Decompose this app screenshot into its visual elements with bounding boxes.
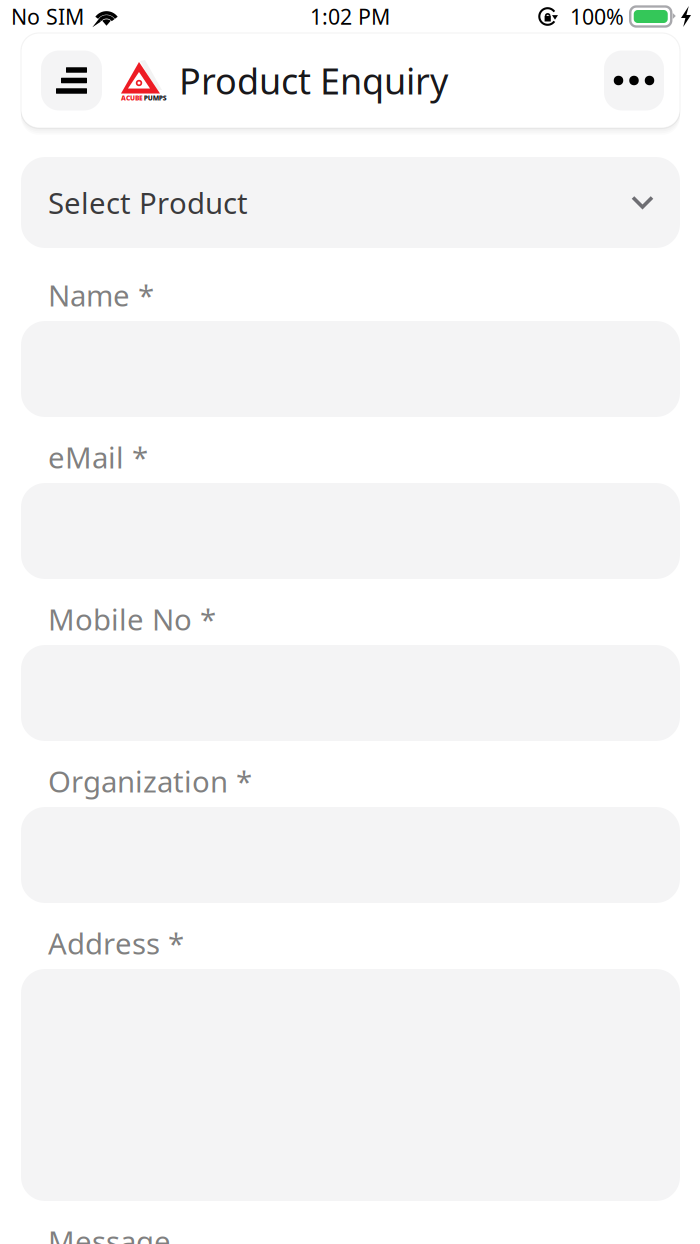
staticText: 1:02 PM: [310, 2, 390, 31]
staticText: Address *: [48, 923, 184, 962]
staticText: Name *: [48, 275, 154, 314]
staticText: ACUBE: [121, 93, 143, 102]
button[interactable]: More options: [604, 50, 664, 110]
staticText: PUMPS: [144, 93, 167, 102]
button[interactable]: Menu: [41, 50, 102, 110]
staticText: 100%: [570, 2, 624, 31]
staticText: eMail *: [48, 437, 148, 476]
staticText: Product Enquiry: [179, 57, 448, 104]
staticText: Select Product: [48, 183, 248, 222]
staticText: No SIM: [11, 2, 84, 31]
staticText: Organization *: [48, 761, 252, 800]
staticText: Message: [48, 1221, 171, 1244]
button[interactable]: Select Product: [0, 157, 700, 248]
staticText: Mobile No *: [48, 599, 216, 638]
